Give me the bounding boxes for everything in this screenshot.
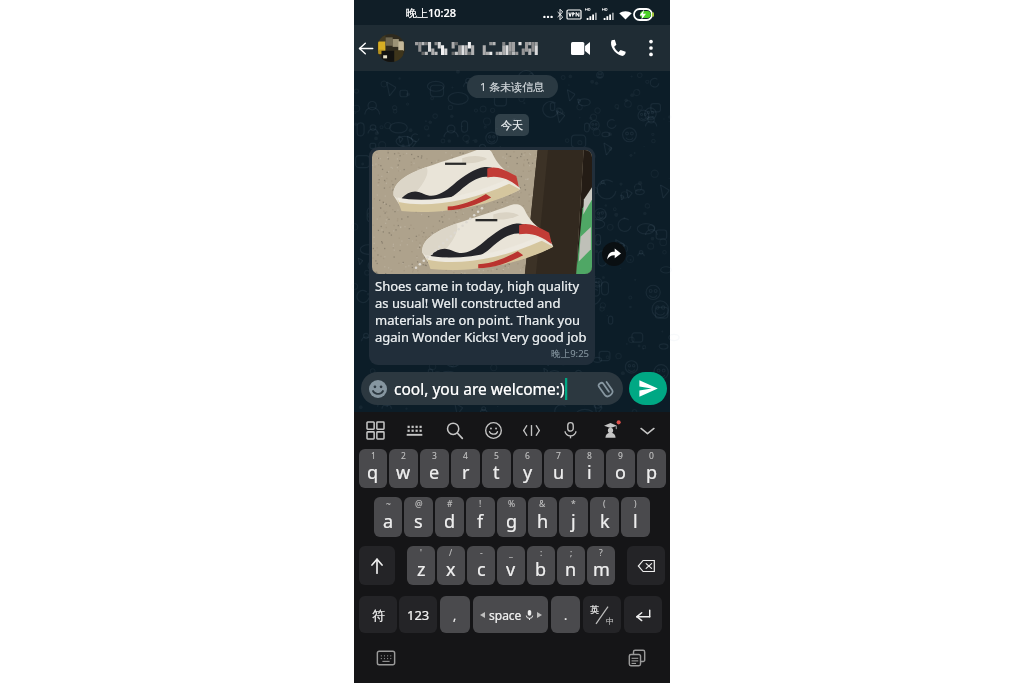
staticText: r — [462, 460, 470, 485]
button[interactable]: Hide keyboard — [633, 412, 661, 449]
button[interactable]: 1 条未读信息 — [467, 75, 558, 98]
staticText: c — [477, 557, 486, 582]
staticText: cool, you are welcome:) — [394, 378, 565, 399]
button[interactable]: 9 — [606, 449, 635, 488]
button[interactable]: Emoji — [479, 412, 507, 449]
button[interactable]: % — [497, 497, 526, 537]
button[interactable]: 2 — [389, 449, 418, 488]
button[interactable]: Switch language — [583, 596, 621, 633]
button[interactable]: 123 — [399, 596, 437, 633]
button[interactable]: Voice input — [556, 412, 584, 449]
button[interactable]: Apps — [361, 412, 389, 449]
button[interactable]: * — [559, 497, 588, 537]
staticText: , — [453, 607, 457, 623]
staticText: q — [367, 460, 379, 485]
button[interactable]: 3 — [420, 449, 449, 488]
button[interactable]: 4 — [451, 449, 480, 488]
button[interactable]: Forward — [602, 242, 626, 266]
button[interactable]: 符 — [359, 596, 397, 633]
staticText: & — [539, 498, 546, 510]
button[interactable]: 6 — [513, 449, 542, 488]
button[interactable]: Back — [356, 31, 375, 65]
staticText: . — [564, 607, 568, 623]
button[interactable]: / — [437, 546, 465, 585]
staticText: _ — [509, 547, 513, 559]
button[interactable]: Search — [440, 412, 468, 449]
staticText: k — [600, 509, 610, 534]
button[interactable]: Video call — [563, 31, 597, 65]
button[interactable]: - — [467, 546, 495, 585]
staticText: / — [449, 547, 453, 559]
staticText: @ — [415, 498, 423, 510]
staticText: i — [587, 460, 592, 485]
button[interactable]: ? — [587, 546, 615, 585]
staticText: 9 — [618, 450, 623, 462]
button[interactable]: cool, you are welcome:) — [361, 372, 623, 405]
staticText: 3 — [432, 450, 437, 462]
staticText: u — [553, 460, 565, 485]
button[interactable]: 5 — [482, 449, 511, 488]
button[interactable]: Clipboard — [624, 645, 650, 671]
button[interactable]: @ — [404, 497, 433, 537]
button[interactable]: & — [528, 497, 557, 537]
button[interactable]: 0 — [637, 449, 666, 488]
staticText: 8 — [587, 450, 592, 462]
button[interactable]: , — [440, 596, 470, 633]
button[interactable]: Text tools — [517, 412, 545, 449]
staticText: ; — [570, 547, 573, 559]
button[interactable]: Keyboard settings — [400, 412, 428, 449]
button[interactable]: Send — [629, 372, 667, 405]
button[interactable]: ! — [466, 497, 495, 537]
button[interactable]: 1 — [359, 449, 387, 488]
staticText: # — [447, 498, 453, 510]
button[interactable]: 8 — [575, 449, 604, 488]
staticText: j — [571, 509, 576, 534]
button[interactable]: Enter — [624, 596, 662, 633]
button[interactable]: Switch keyboard — [373, 645, 399, 671]
staticText: 1 条未读信息 — [480, 79, 545, 94]
staticText: : — [540, 547, 543, 559]
button[interactable]: ) — [621, 497, 650, 537]
staticText: d — [444, 509, 456, 534]
staticText: ~ — [386, 498, 391, 510]
button[interactable]: Voice call — [601, 31, 635, 65]
button[interactable]: Shoes came in today, high quality as usu… — [369, 147, 595, 365]
staticText: f — [477, 509, 484, 534]
button[interactable]: Shift — [359, 546, 395, 585]
button[interactable]: . — [551, 596, 580, 633]
staticText: 2 — [401, 450, 406, 462]
staticText: Shoes came in today, high quality as usu… — [375, 277, 589, 346]
button[interactable]: : — [527, 546, 555, 585]
staticText: h — [537, 509, 549, 534]
staticText: m — [593, 557, 610, 582]
button[interactable]: _ — [497, 546, 525, 585]
button[interactable]: Account — [596, 412, 624, 449]
staticText: z — [417, 557, 426, 582]
staticText: ' — [420, 547, 422, 559]
staticText: e — [429, 460, 440, 485]
button[interactable]: Backspace — [627, 546, 665, 585]
staticText: w — [396, 460, 411, 485]
staticText: 0 — [649, 450, 654, 462]
button[interactable]: ~ — [374, 497, 402, 537]
staticText: 晚上9:25 — [372, 347, 589, 360]
button[interactable]: More options — [637, 34, 665, 62]
button[interactable]: ; — [557, 546, 585, 585]
button[interactable]: space — [473, 596, 548, 633]
staticText: x — [446, 557, 456, 582]
staticText: 1 — [371, 450, 376, 462]
staticText: g — [506, 509, 518, 534]
staticText: ( — [603, 498, 606, 510]
staticText: y — [523, 460, 533, 485]
staticText: - — [480, 547, 483, 559]
staticText: ? — [599, 547, 603, 559]
staticText: ) — [634, 498, 637, 510]
staticText: 今天 — [501, 118, 523, 132]
button[interactable]: # — [435, 497, 464, 537]
staticText: n — [565, 557, 577, 582]
button[interactable]: ( — [590, 497, 619, 537]
staticText: 英 — [590, 604, 599, 615]
button[interactable]: ' — [407, 546, 435, 585]
staticText: 6 — [525, 450, 530, 462]
button[interactable]: 7 — [544, 449, 573, 488]
